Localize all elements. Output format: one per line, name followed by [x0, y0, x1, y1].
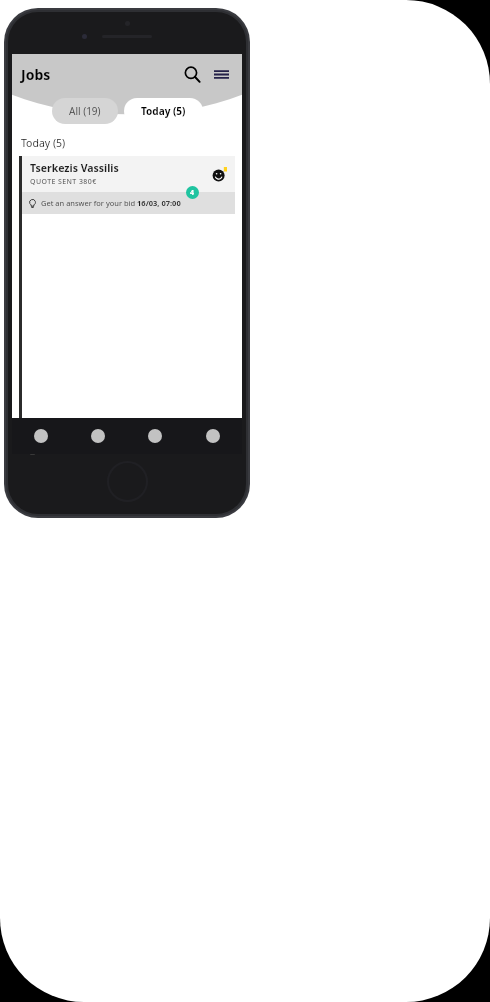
staticText: Today (5) [141, 104, 186, 118]
button[interactable]: Tab 2 [69, 418, 126, 454]
staticText: QUOTE SENT 380€ [30, 177, 97, 187]
button[interactable]: Menu [209, 62, 233, 86]
staticText: 4 [190, 188, 195, 198]
staticText: Get an answer for your bid 16/03, 07:00 [41, 198, 181, 208]
button[interactable]: Tserkezis Vassilis [19, 156, 235, 454]
button[interactable]: Today (5) [124, 98, 203, 124]
button[interactable]: Tab 4 [184, 418, 242, 454]
button[interactable]: All (19) [52, 98, 118, 124]
staticText: Tserkezis Vassilis [30, 161, 119, 175]
button[interactable]: Tab 3 [126, 418, 184, 454]
button[interactable]: Tab 1 [12, 418, 69, 454]
staticText: All (19) [69, 104, 101, 118]
staticText: Jobs [21, 65, 51, 84]
button[interactable]: Search [180, 62, 204, 86]
staticText: Today (5) [21, 136, 66, 150]
